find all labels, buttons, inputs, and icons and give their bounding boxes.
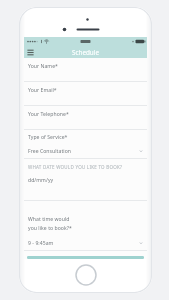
staticText: What time would — [28, 216, 70, 223]
staticText: WHAT DATE WOULD YOU LIKE TO BOOK? — [28, 164, 123, 170]
button[interactable]: Menu — [25, 47, 36, 58]
button[interactable]: Free Consultation — [24, 144, 147, 158]
staticText: Type of Service* — [28, 134, 68, 141]
staticText: you like to book?* — [28, 225, 72, 232]
button[interactable]: Submit — [27, 256, 144, 259]
staticText: Your Email* — [28, 87, 57, 94]
button[interactable]: Your Telephone* — [24, 106, 147, 129]
staticText: Schedule — [72, 48, 99, 57]
staticText: Your Name* — [28, 63, 58, 70]
button[interactable]: Home — [75, 264, 97, 286]
button[interactable]: Type of Service* — [24, 130, 147, 144]
button[interactable]: dd/mm/yy — [24, 174, 147, 187]
staticText: 9 - 9:45am — [28, 240, 54, 247]
button[interactable]: Your Email* — [24, 82, 147, 105]
staticText: dd/mm/yy — [28, 177, 54, 184]
staticText: Your Telephone* — [28, 111, 69, 118]
button[interactable]: Your Name* — [24, 58, 147, 81]
staticText: Free Consultation — [28, 148, 71, 155]
button[interactable]: 9 - 9:45am — [24, 236, 147, 250]
